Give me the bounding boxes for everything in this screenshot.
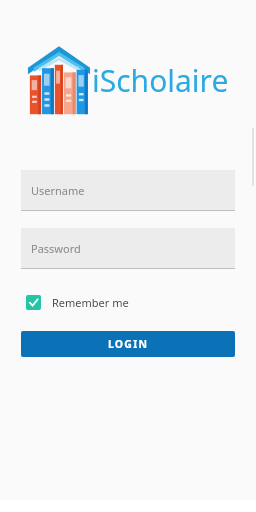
button[interactable]: LOGIN bbox=[21, 331, 235, 357]
staticText: Remember me bbox=[52, 295, 129, 310]
other: iScholaire logo bbox=[27, 42, 91, 118]
button[interactable]: Password bbox=[21, 228, 235, 269]
staticText: LOGIN bbox=[108, 337, 149, 351]
staticText: iScholaire bbox=[92, 60, 229, 101]
staticText: Password bbox=[31, 241, 81, 256]
staticText: Username bbox=[31, 183, 85, 198]
button[interactable]: Remember me bbox=[26, 295, 129, 310]
button[interactable]: Username bbox=[21, 170, 235, 211]
